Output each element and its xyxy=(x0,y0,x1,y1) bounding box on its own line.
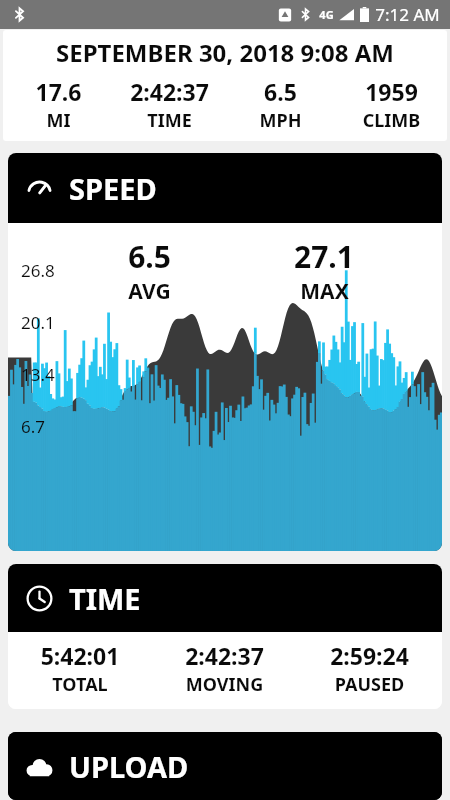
staticText: 6.5 xyxy=(225,76,336,107)
staticText: PAUSED xyxy=(297,672,442,697)
staticText: 26.8 xyxy=(21,259,55,282)
staticText: 1959 xyxy=(336,76,447,107)
button[interactable]: 2:42:37 xyxy=(152,640,297,697)
staticText: 27.1 xyxy=(294,236,354,277)
staticText: UPLOAD xyxy=(69,747,189,786)
staticText: 4G xyxy=(319,7,334,22)
staticText: 2:59:24 xyxy=(297,640,442,671)
staticText: 6.5 xyxy=(128,236,171,277)
staticText: MI xyxy=(3,108,114,133)
button[interactable]: 2:42:37 xyxy=(114,76,225,133)
button[interactable]: 27.1 xyxy=(294,236,354,306)
button[interactable]: 17.6 xyxy=(3,76,114,133)
other: Speed xyxy=(26,175,53,202)
staticText: 17.6 xyxy=(3,76,114,107)
button[interactable]: 5:42:01 xyxy=(8,640,152,697)
staticText: 20.1 xyxy=(21,311,55,334)
staticText: TIME xyxy=(69,579,141,618)
staticText: 7:12 AM xyxy=(375,3,440,26)
staticText: MAX xyxy=(300,277,349,306)
staticText: TOTAL xyxy=(8,672,152,697)
button[interactable]: SEPTEMBER 30, 2018 9:08 AM xyxy=(3,30,447,141)
button[interactable]: Upload xyxy=(8,732,442,800)
staticText: AVG xyxy=(128,277,171,306)
staticText: 13.4 xyxy=(21,363,55,386)
other: Time xyxy=(26,585,53,612)
staticText: SEPTEMBER 30, 2018 9:08 AM xyxy=(3,36,447,69)
staticText: TIME xyxy=(114,108,225,133)
staticText: 2:42:37 xyxy=(114,76,225,107)
staticText: SPEED xyxy=(69,169,157,208)
staticText: CLIMB xyxy=(336,108,447,133)
other: Upload xyxy=(26,753,53,780)
button[interactable]: 6.5 xyxy=(225,76,336,133)
staticText: 5:42:01 xyxy=(8,640,152,671)
button[interactable]: Time xyxy=(8,564,442,632)
button[interactable]: 6.5 xyxy=(128,236,171,306)
button[interactable]: 1959 xyxy=(336,76,447,133)
button[interactable]: 2:59:24 xyxy=(297,640,442,697)
staticText: 6.7 xyxy=(21,415,46,438)
other: Bluetooth xyxy=(12,7,27,22)
staticText: 2:42:37 xyxy=(152,640,297,671)
staticText: MPH xyxy=(225,108,336,133)
staticText: MOVING xyxy=(152,672,297,697)
button[interactable]: Speed xyxy=(8,153,442,223)
